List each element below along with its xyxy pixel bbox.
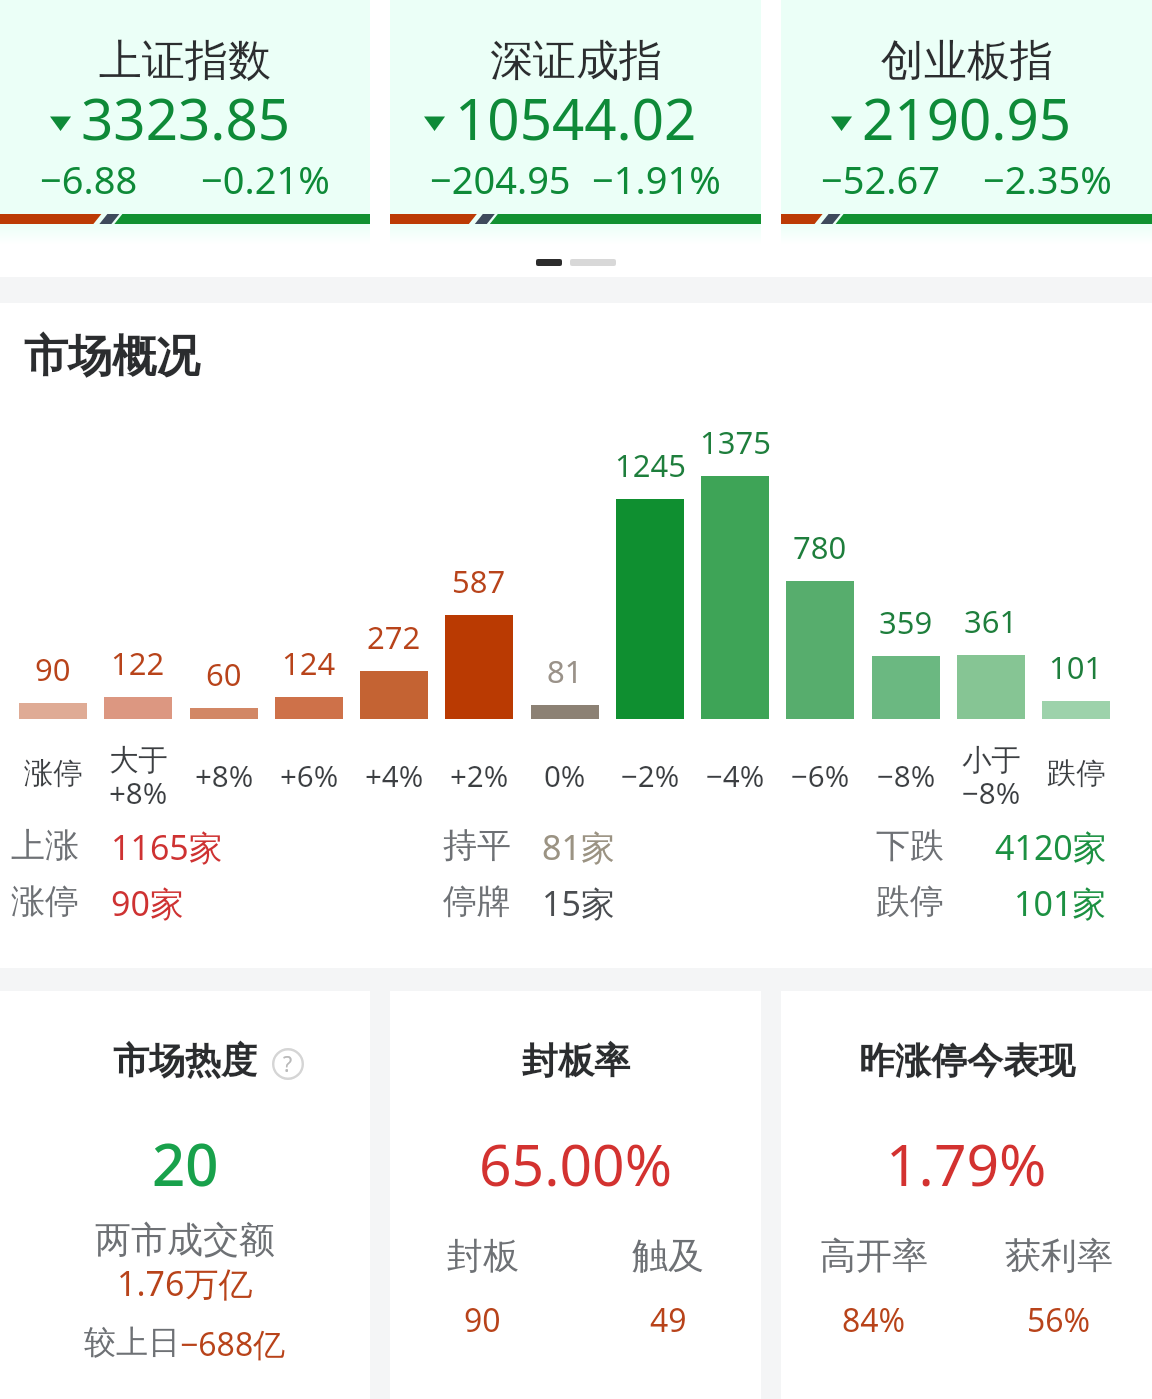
staticText: 2190.95 [862,80,1072,157]
staticText: 1.79% [886,1125,1047,1203]
staticText: +8% [195,755,254,795]
staticText: 停牌 [443,880,511,923]
staticText: 1.76万亿 [117,1260,253,1306]
staticText: 587 [452,560,506,602]
staticText: −6% [791,755,850,795]
staticText: 15家 [542,880,615,926]
staticText: 84% [842,1298,906,1342]
button[interactable]: 大于+8% 122 [96,430,180,805]
button[interactable]: −8% 359 [864,430,948,805]
staticText: 昨涨停今表现 [859,1038,1075,1083]
button[interactable]: +4% 272 [352,430,436,805]
staticText: 56% [1027,1298,1091,1342]
staticText: 小于 [962,742,1021,779]
button[interactable]: 跌停 101 [1034,430,1118,805]
staticText: 90 [35,648,71,690]
staticText: 10544.02 [455,80,697,157]
button[interactable]: 深证成指 [390,0,761,245]
staticText: 1165家 [111,824,223,870]
button[interactable]: −4% 1375 [693,430,777,805]
staticText: −4% [706,755,765,795]
button[interactable]: +6% 124 [267,430,351,805]
staticText: 较上日 [84,1322,180,1362]
staticText: −688亿 [180,1322,286,1366]
button[interactable]: 上证指数 [0,0,370,245]
staticText: 市场概况 [24,329,200,384]
staticText: 下跌 [876,824,944,867]
staticText: 65.00% [479,1125,673,1203]
staticText: −8% [877,755,936,795]
staticText: 创业板指 [881,34,1053,88]
staticText: 触及 [632,1233,704,1278]
staticText: 4120家 [995,824,1107,870]
staticText: +2% [450,755,509,795]
staticText: 封板 [447,1233,519,1278]
staticText: 0% [544,755,586,795]
staticText: 上证指数 [99,34,271,88]
button[interactable]: 0% 81 [523,430,607,805]
staticText: −0.21% [201,153,330,205]
staticText: 90 [464,1298,501,1342]
staticText: 市场热度 [113,1038,257,1083]
button[interactable]: 小于−8% 361 [949,430,1033,805]
staticText: −6.88 [40,153,138,205]
button[interactable]: 涨停 90 [11,430,95,805]
staticText: 361 [964,600,1018,642]
button[interactable]: 市场热度 [0,991,370,1399]
staticText: +8% [109,772,168,812]
button[interactable]: 昨涨停今表现 [781,991,1152,1399]
staticText: −2.35% [983,153,1112,205]
staticText: −1.91% [592,153,721,205]
staticText: 49 [650,1298,687,1342]
staticText: ? [283,1050,293,1079]
staticText: 359 [879,601,933,643]
staticText: 跌停 [876,880,944,923]
staticText: 780 [793,526,847,568]
staticText: 涨停 [24,755,83,792]
staticText: 跌停 [1047,755,1106,792]
staticText: 122 [111,642,165,684]
button[interactable]: +8% 60 [182,430,266,805]
staticText: 1375 [700,421,771,463]
staticText: 高开率 [820,1233,928,1278]
staticText: 大于 [109,742,168,779]
staticText: 20 [152,1124,219,1203]
staticText: 101 [1049,646,1103,688]
button[interactable]: −2% 1245 [608,430,692,805]
staticText: 涨停 [11,880,79,923]
staticText: 272 [367,616,421,658]
staticText: 1245 [615,444,686,486]
button[interactable]: 说明 [272,1048,304,1080]
staticText: 封板率 [522,1038,630,1083]
button[interactable]: 创业板指 [781,0,1152,245]
button[interactable]: 封板率 [390,991,761,1399]
staticText: 深证成指 [490,34,662,88]
staticText: −2% [621,755,680,795]
button[interactable]: −6% 780 [778,430,862,805]
staticText: 124 [282,642,336,684]
staticText: +6% [280,755,339,795]
staticText: 90家 [111,880,184,926]
staticText: 获利率 [1005,1233,1113,1278]
staticText: 60 [206,653,242,695]
staticText: 3323.85 [81,80,291,157]
staticText: +4% [365,755,424,795]
staticText: 持平 [443,824,511,867]
staticText: 81 [547,650,583,692]
staticText: 81家 [542,824,615,870]
staticText: −204.95 [430,153,571,205]
staticText: 101家 [1014,880,1107,926]
staticText: 两市成交额 [95,1217,275,1262]
staticText: −52.67 [821,153,940,205]
staticText: −8% [962,772,1021,812]
staticText: 上涨 [11,824,79,867]
button[interactable]: +2% 587 [437,430,521,805]
